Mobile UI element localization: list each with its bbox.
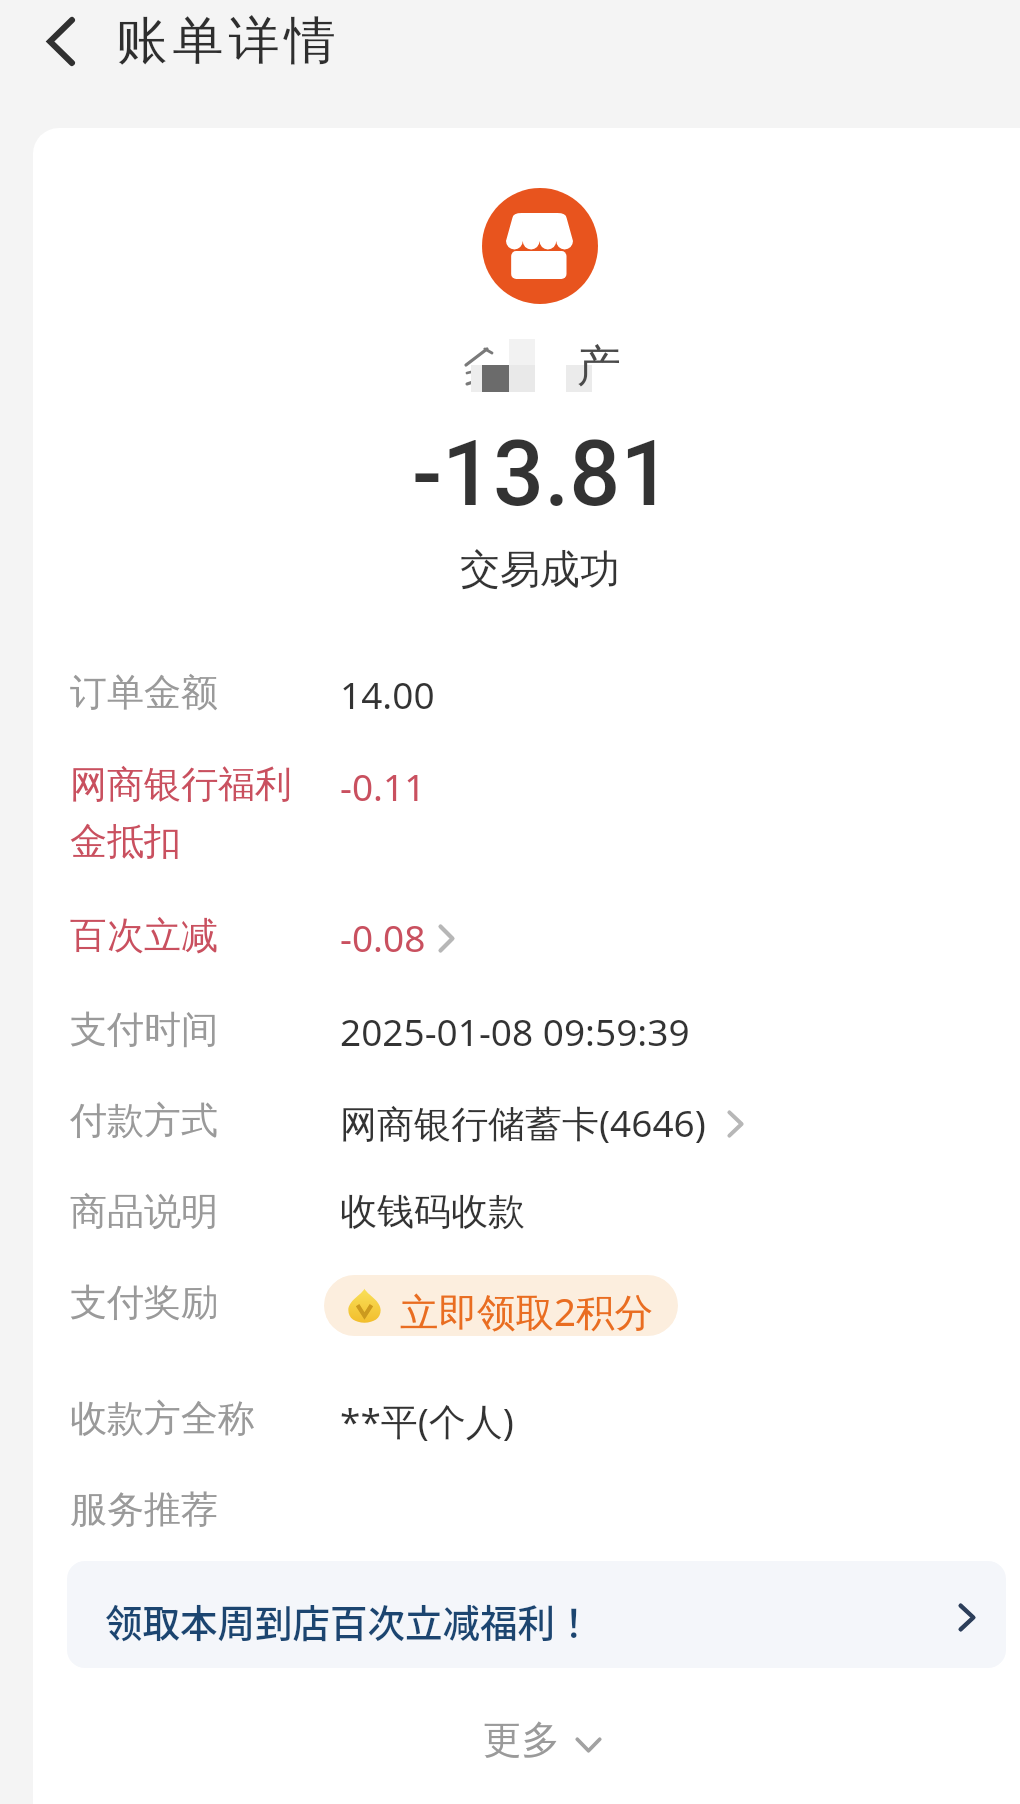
staticText: 支付时间	[70, 1006, 218, 1053]
staticText: 网商银行储蓄卡(4646)	[340, 1097, 706, 1148]
staticText: 领取本周到店百次立减福利！	[105, 1593, 593, 1647]
staticText: 支付奖励	[70, 1279, 218, 1326]
button[interactable]: 领取本周到店百次立减福利！	[67, 1561, 1006, 1668]
staticText: 14.00	[340, 669, 435, 719]
staticText: -0.08	[340, 912, 426, 962]
staticText: 服务推荐	[70, 1486, 218, 1533]
button[interactable]: 立即领取2积分	[324, 1275, 678, 1336]
button[interactable]: Back	[26, 6, 96, 76]
staticText: -0.11	[340, 761, 426, 811]
staticText: 2025-01-08 09:59:39	[340, 1006, 690, 1056]
staticText: 付款方式	[70, 1097, 218, 1144]
staticText: 网商银行福利金抵扣	[70, 761, 320, 865]
staticText: 收款方全称	[70, 1395, 255, 1442]
button[interactable]: 更多	[342, 1712, 742, 1770]
staticText: 交易成功	[460, 544, 620, 594]
button[interactable]: 付款方式	[50, 1077, 970, 1153]
staticText: 立即领取2积分	[400, 1285, 654, 1336]
staticText: 更多	[483, 1716, 560, 1765]
staticText: **平(个人)	[340, 1395, 514, 1446]
staticText: 百次立减	[70, 912, 218, 959]
staticText: 账单详情	[114, 9, 338, 73]
staticText: 收钱码收款	[340, 1188, 525, 1235]
staticText: -13.81	[412, 422, 672, 527]
staticText: 产	[577, 339, 621, 394]
staticText: 订单金额	[70, 669, 218, 716]
staticText: 商品说明	[70, 1188, 218, 1235]
button[interactable]: 百次立减	[50, 892, 970, 968]
